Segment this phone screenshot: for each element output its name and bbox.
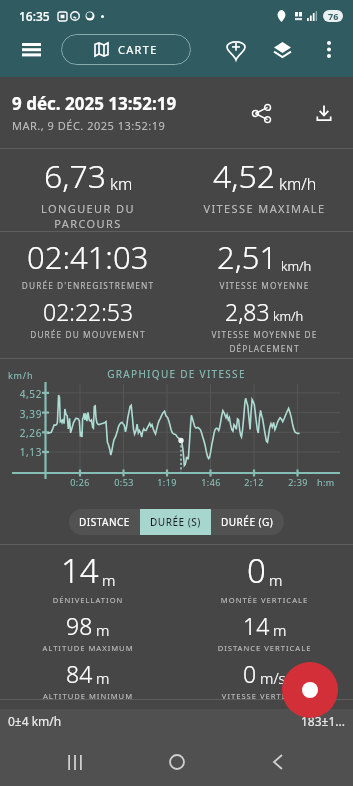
- staticText: DISTANCE VERTICALE: [176, 643, 353, 653]
- staticText: 0:53: [107, 476, 141, 488]
- button[interactable]: Map layers: [264, 31, 301, 68]
- staticText: 2,51: [217, 236, 278, 278]
- button[interactable]: DURÉE (G): [211, 509, 284, 535]
- staticText: 02:41:03: [27, 236, 149, 278]
- staticText: 76: [328, 10, 339, 22]
- staticText: m: [96, 668, 110, 688]
- button[interactable]: Add waypoint: [217, 31, 254, 68]
- staticText: 9 déc. 2025 13:52:19: [12, 92, 177, 115]
- staticText: ALTITUDE MINIMUM: [0, 691, 176, 699]
- staticText: 3,39: [0, 407, 42, 421]
- staticText: 0±4 km/h: [8, 713, 62, 729]
- button[interactable]: DURÉE (S): [140, 509, 211, 535]
- staticText: GRAPHIQUE DE VITESSE: [0, 367, 353, 381]
- button[interactable]: Back: [251, 738, 305, 786]
- staticText: km/h: [8, 369, 34, 381]
- staticText: 84: [66, 658, 93, 689]
- staticText: VITESSE VERTICALE: [176, 691, 353, 699]
- button[interactable]: More options: [311, 31, 347, 67]
- staticText: 4,52: [213, 154, 276, 198]
- staticText: MONTÉE VERTICALE: [176, 595, 353, 605]
- button[interactable]: Record: [282, 662, 338, 718]
- staticText: 2:12: [237, 476, 271, 488]
- staticText: m: [273, 620, 287, 640]
- staticText: DURÉE D'ENREGISTREMENT: [0, 280, 176, 291]
- staticText: m: [102, 570, 116, 590]
- button[interactable]: Share: [240, 92, 282, 134]
- staticText: m/s: [260, 668, 286, 688]
- staticText: 1:19: [150, 476, 184, 488]
- staticText: 1,13: [0, 445, 42, 459]
- staticText: km/h: [281, 257, 312, 275]
- staticText: 0:26: [63, 476, 97, 488]
- staticText: DÉNIVELLATION: [0, 595, 176, 605]
- button[interactable]: DISTANCE: [69, 509, 140, 535]
- staticText: km/h: [279, 173, 317, 195]
- staticText: 0: [247, 548, 266, 593]
- button[interactable]: Home: [150, 738, 204, 786]
- staticText: 6,73: [44, 154, 107, 198]
- staticText: ALTITUDE MAXIMUM: [0, 643, 176, 653]
- staticText: 14: [243, 610, 270, 641]
- button[interactable]: Recent apps: [48, 738, 102, 786]
- staticText: DURÉE (S): [150, 515, 201, 529]
- staticText: DURÉE (G): [221, 515, 274, 529]
- staticText: m: [96, 620, 110, 640]
- staticText: VITESSE MAXIMALE: [176, 201, 353, 216]
- staticText: LONGUEUR DU PARCOURS: [0, 201, 176, 231]
- staticText: km/h: [273, 307, 304, 325]
- staticText: 14: [61, 548, 99, 593]
- button[interactable]: CARTE: [61, 34, 191, 65]
- staticText: 2:39: [281, 476, 315, 488]
- staticText: 02:22:53: [43, 296, 134, 327]
- staticText: m: [269, 570, 283, 590]
- staticText: 183±1...: [301, 713, 345, 729]
- staticText: MAR., 9 DÉC. 2025 13:52:19: [12, 118, 166, 133]
- staticText: CARTE: [118, 42, 158, 57]
- staticText: 1:46: [194, 476, 228, 488]
- staticText: km: [110, 173, 133, 195]
- staticText: 2,26: [0, 426, 42, 440]
- button[interactable]: Download: [303, 92, 345, 134]
- staticText: VITESSE MOYENNE: [176, 280, 353, 291]
- staticText: DISTANCE: [79, 515, 130, 529]
- staticText: 0: [243, 658, 257, 689]
- staticText: DURÉE DU MOUVEMENT: [0, 329, 176, 340]
- staticText: 4,52: [0, 387, 42, 401]
- staticText: 16:35: [19, 8, 50, 24]
- staticText: VITESSE MOYENNE DE DÉPLACEMENT: [176, 329, 353, 354]
- staticText: 2,83: [225, 296, 270, 327]
- staticText: 98: [66, 610, 93, 641]
- staticText: h:m: [317, 476, 335, 488]
- button[interactable]: Menu: [13, 31, 50, 68]
